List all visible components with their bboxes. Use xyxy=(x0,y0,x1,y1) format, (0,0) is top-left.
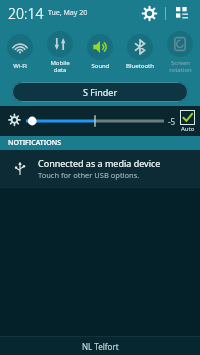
button[interactable]: Mobile data xyxy=(40,31,80,74)
button[interactable]: Brightness slider xyxy=(26,110,164,132)
staticText: -5 xyxy=(168,116,176,127)
staticText: Auto xyxy=(181,125,195,133)
button[interactable]: Sound xyxy=(80,34,120,70)
button[interactable]: Screen rotation xyxy=(160,31,200,74)
button[interactable]: Edit quick settings xyxy=(172,3,192,23)
staticText: 20:14 xyxy=(8,4,44,23)
staticText: Screen rotation xyxy=(169,59,192,74)
staticText: Sound xyxy=(91,62,110,70)
staticText: NL Telfort xyxy=(82,341,119,352)
staticText: Tue, May 20 xyxy=(48,8,88,18)
staticText: Wi-Fi xyxy=(13,62,27,70)
staticText: Mobile data xyxy=(50,59,70,74)
staticText: Touch for other USB options. xyxy=(38,170,140,180)
button[interactable]: Connected as a media device xyxy=(0,150,200,187)
button[interactable]: Brightness xyxy=(6,112,24,130)
staticText: Connected as a media device xyxy=(38,157,161,169)
button[interactable]: Auto xyxy=(180,110,195,133)
staticText: NOTIFICATIONS xyxy=(8,138,62,148)
button[interactable]: Bluetooth xyxy=(120,34,160,70)
staticText: Bluetooth xyxy=(126,62,154,70)
button[interactable]: Wi-Fi xyxy=(0,34,40,70)
staticText: S Finder xyxy=(83,86,118,98)
button[interactable]: Settings xyxy=(139,3,159,23)
button[interactable]: S Finder xyxy=(12,82,188,102)
